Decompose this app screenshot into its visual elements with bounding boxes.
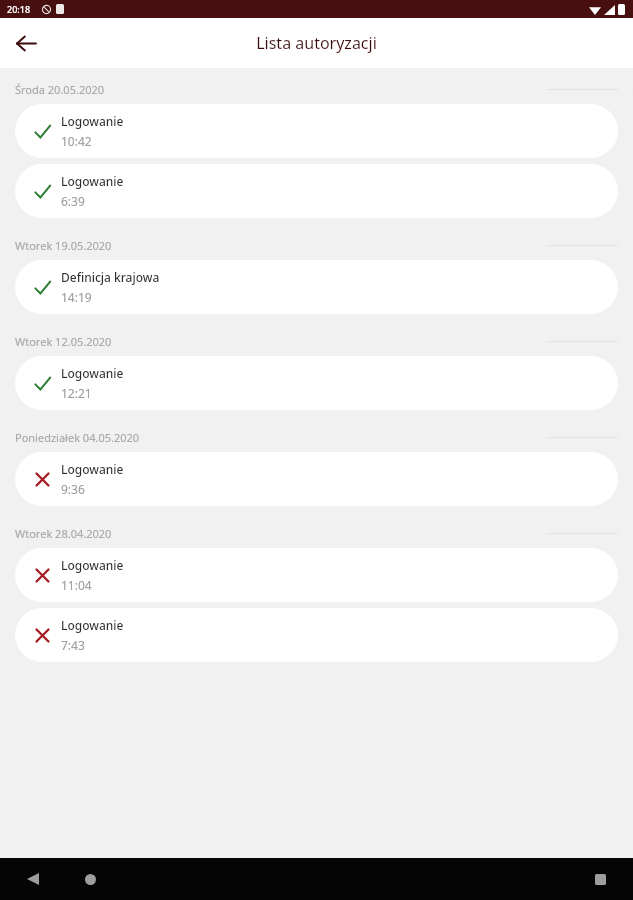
staticText: Środa 20.05.2020 [15,82,105,97]
staticText: 20:18 [7,3,31,15]
button[interactable]: Wstecz [18,864,48,894]
button[interactable]: Logowanie [15,356,618,410]
staticText: Logowanie [61,173,124,189]
button[interactable]: Logowanie [15,104,618,158]
staticText: Wtorek 19.05.2020 [15,238,112,253]
staticText: Logowanie [61,113,124,129]
staticText: Logowanie [61,461,124,477]
staticText: Wtorek 12.05.2020 [15,334,112,349]
staticText: 12:21 [61,385,92,401]
staticText: Lista autoryzacji [256,32,377,54]
button[interactable]: Ostatnie aplikacje [585,864,615,894]
staticText: Logowanie [61,365,124,381]
staticText: 10:42 [61,133,92,149]
staticText: Wtorek 28.04.2020 [15,526,112,541]
button[interactable]: Logowanie [15,452,618,506]
staticText: 14:19 [61,289,92,305]
staticText: Definicja krajowa [61,269,160,285]
button[interactable]: Logowanie [15,608,618,662]
staticText: Poniedziałek 04.05.2020 [15,430,140,445]
button[interactable]: Ekran główny [75,864,105,894]
button[interactable]: Logowanie [15,164,618,218]
button[interactable]: Wstecz [8,25,44,61]
button[interactable]: Logowanie [15,548,618,602]
staticText: 11:04 [61,577,92,593]
staticText: 9:36 [61,481,85,497]
staticText: Logowanie [61,557,124,573]
staticText: 7:43 [61,637,85,653]
staticText: Logowanie [61,617,124,633]
button[interactable]: Definicja krajowa [15,260,618,314]
staticText: 6:39 [61,193,85,209]
